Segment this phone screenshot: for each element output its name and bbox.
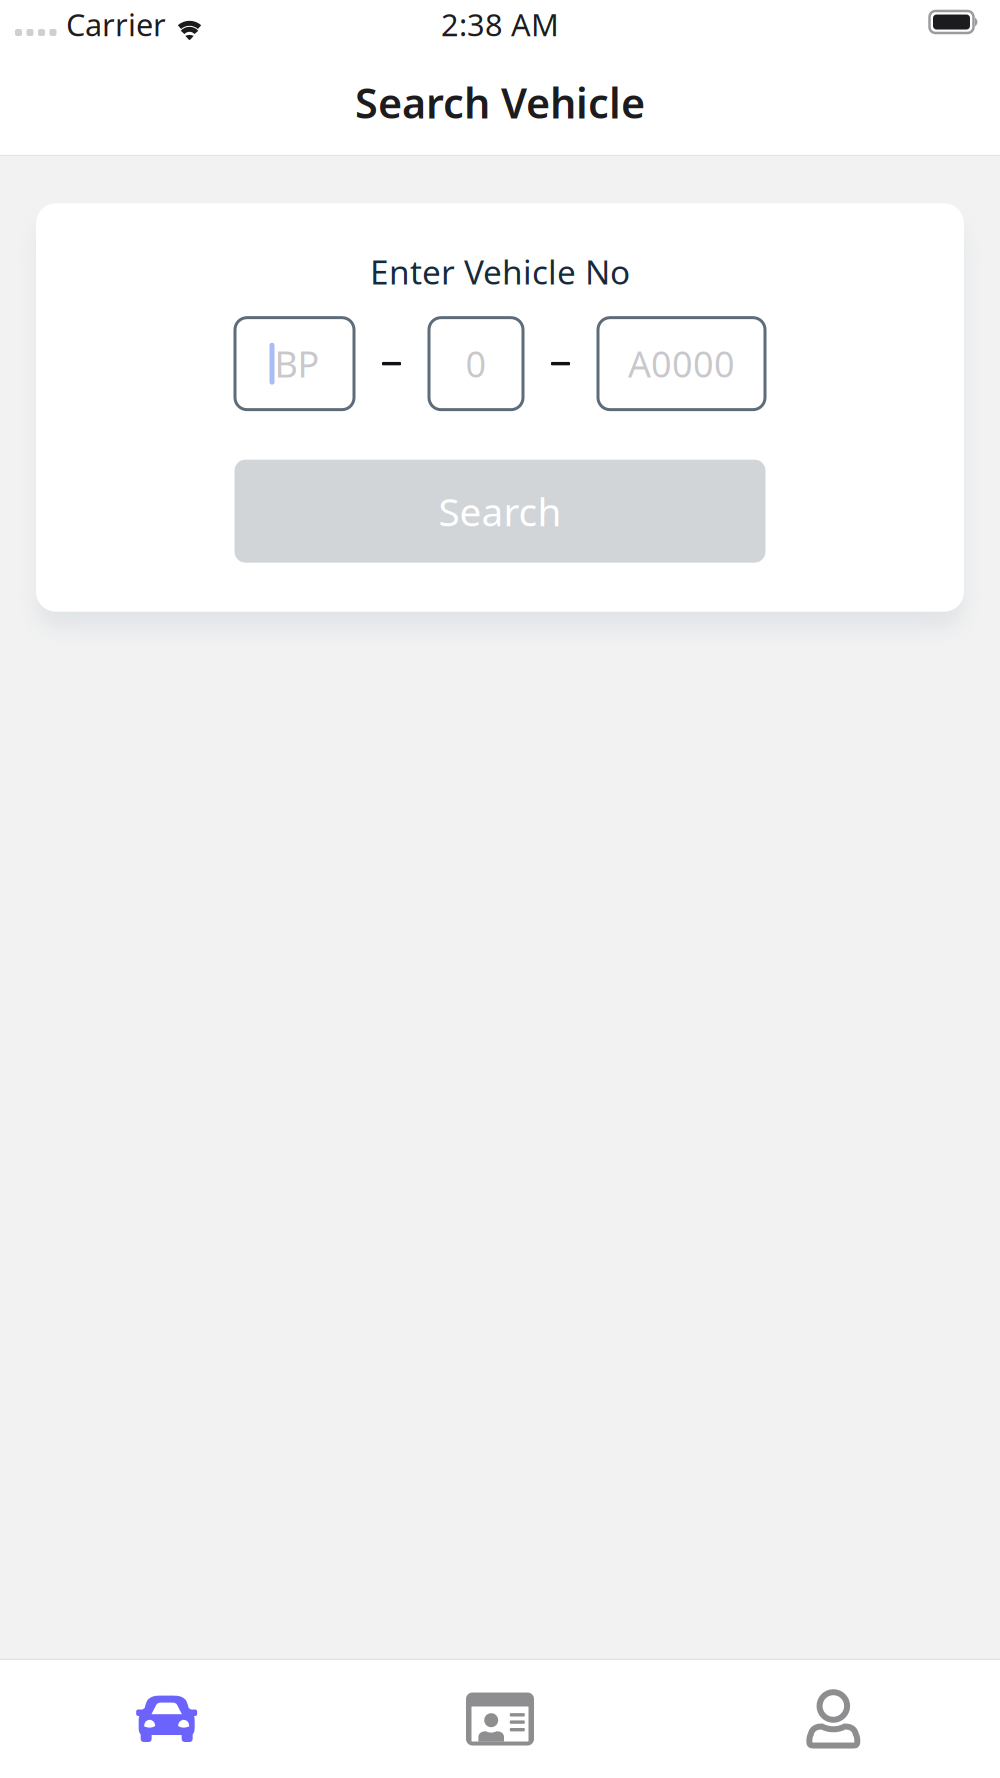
staticText: Search xyxy=(438,485,561,537)
staticText: 0 xyxy=(465,340,486,387)
button[interactable]: BP xyxy=(235,318,354,410)
button[interactable]: Profile xyxy=(667,1660,1000,1778)
staticText: Search Vehicle xyxy=(355,75,645,130)
button[interactable]: Search xyxy=(234,460,765,563)
staticText: Carrier xyxy=(66,4,166,45)
staticText: A0000 xyxy=(628,340,735,387)
staticText: 2:38 AM xyxy=(441,4,559,45)
button[interactable]: Licence xyxy=(333,1660,667,1778)
staticText: BP xyxy=(274,340,319,387)
button[interactable]: A0000 xyxy=(598,318,765,410)
staticText: Enter Vehicle No xyxy=(370,249,630,294)
button[interactable]: 0 xyxy=(429,318,523,410)
button[interactable]: Vehicles xyxy=(0,1660,333,1778)
